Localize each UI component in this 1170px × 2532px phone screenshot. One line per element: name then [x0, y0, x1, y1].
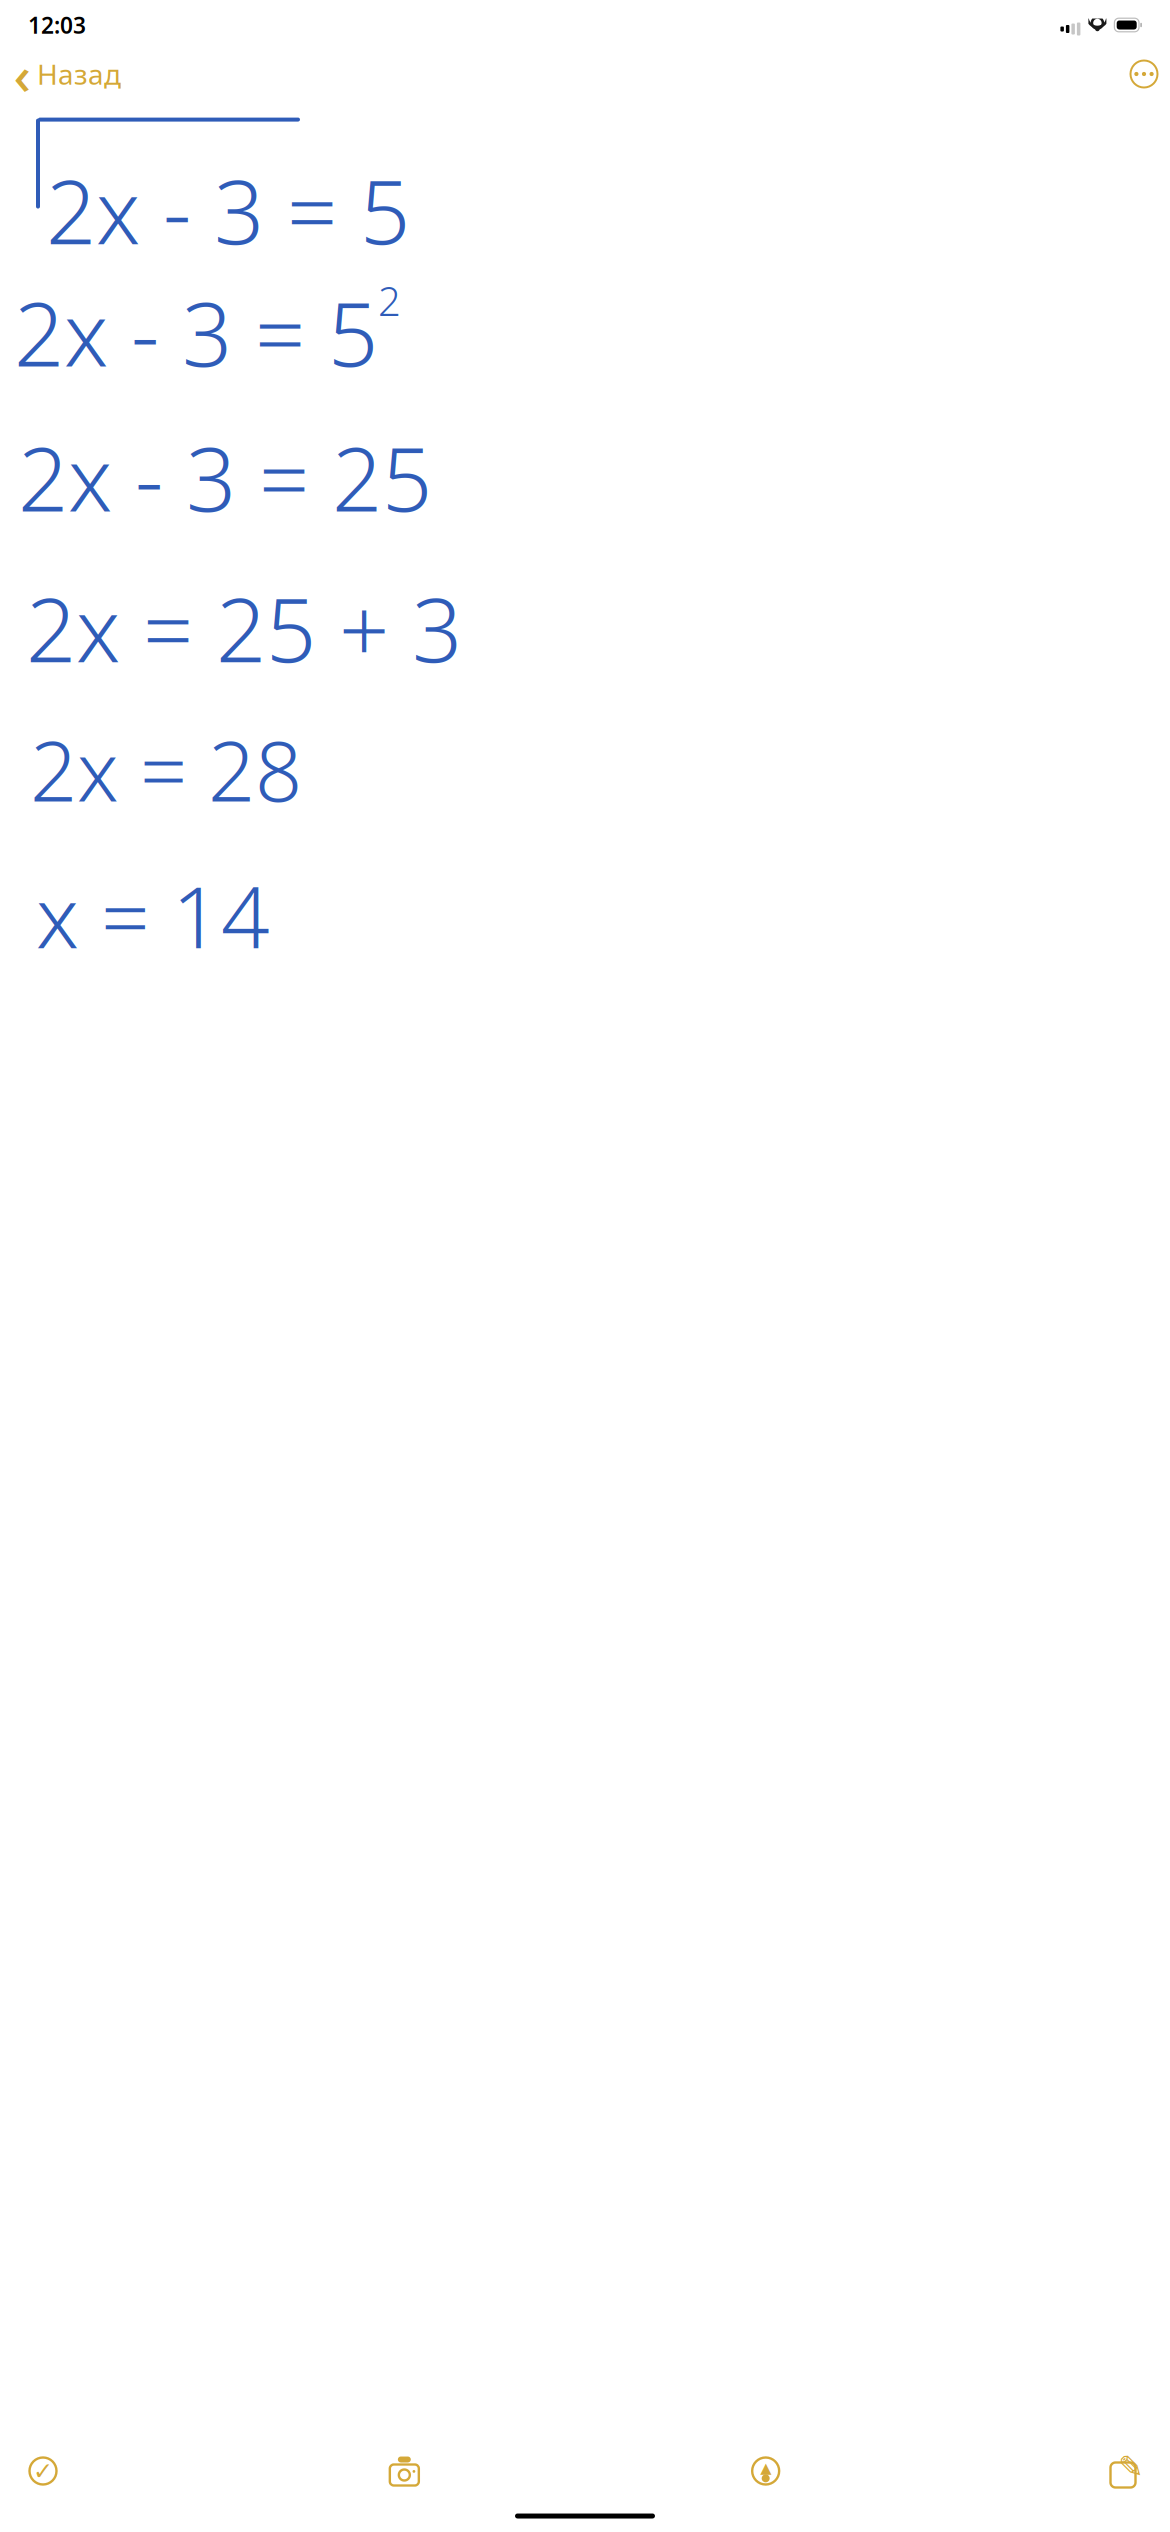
staticText: ▲: [760, 2460, 771, 2476]
staticText: 2x = 25 + 3: [26, 570, 462, 687]
staticText: ✓: [33, 2457, 53, 2485]
staticText: 2x - 3 = 25: [18, 419, 432, 536]
staticText: ✎: [1118, 2450, 1144, 2484]
staticText: Назад: [37, 55, 121, 93]
staticText: 2x = 28: [30, 715, 302, 824]
staticText: x = 14: [36, 858, 270, 972]
button[interactable]: Insert photo: [361, 2445, 447, 2497]
staticText: ‹: [13, 39, 30, 109]
staticText: 12:03: [28, 10, 86, 40]
button[interactable]: More options: [1122, 52, 1166, 96]
staticText: 2x - 3 = 5: [46, 152, 410, 268]
button[interactable]: Done: [0, 2445, 86, 2497]
staticText: 2x - 3 = 5: [14, 274, 378, 391]
button[interactable]: ‹: [4, 50, 135, 98]
button[interactable]: Compose: [1084, 2445, 1170, 2497]
staticText: 2: [378, 274, 401, 327]
button[interactable]: Marker tool: [723, 2445, 809, 2497]
